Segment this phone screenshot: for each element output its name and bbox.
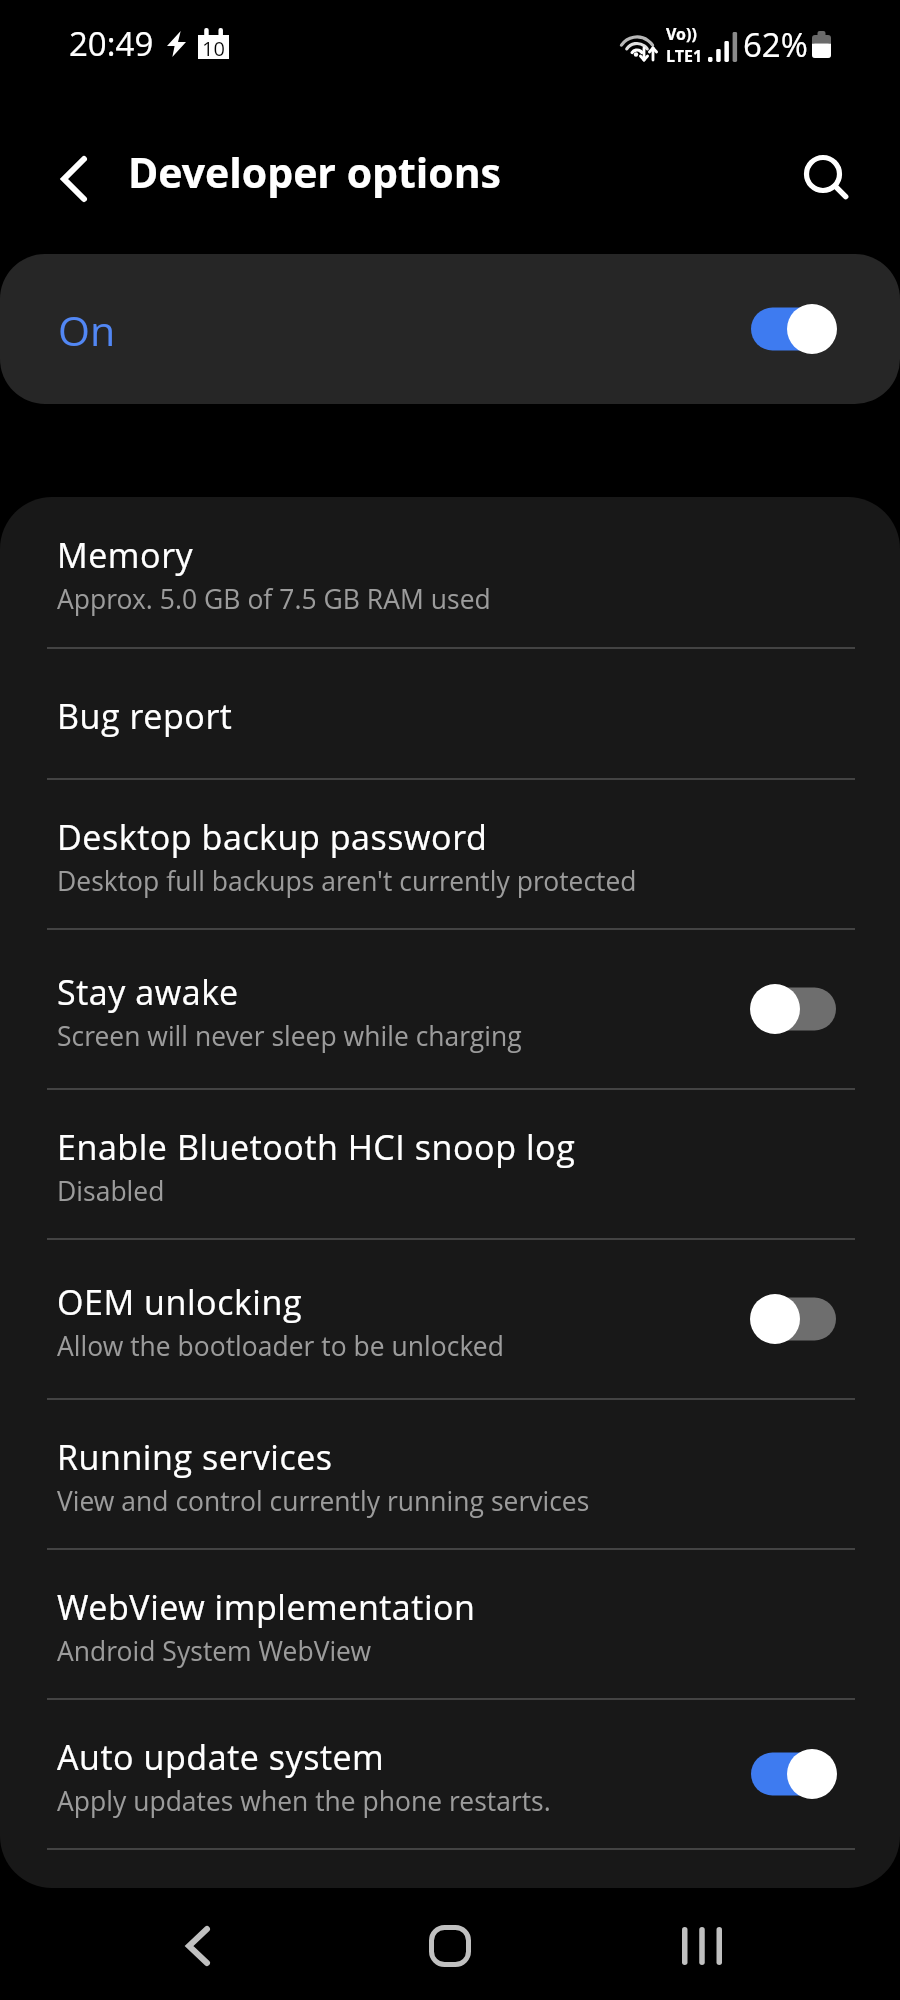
button[interactable]: Desktop backup password — [0, 780, 900, 928]
staticText: Running services — [57, 1434, 333, 1480]
button[interactable]: WebView implementation — [0, 1550, 900, 1698]
button[interactable]: Recent apps — [657, 1901, 747, 1991]
staticText: Android System WebView — [57, 1633, 372, 1669]
button[interactable]: OEM unlocking — [0, 1240, 900, 1398]
button[interactable]: Navigate up — [38, 143, 110, 215]
button[interactable]: Home — [405, 1901, 495, 1991]
staticText: 62% — [743, 22, 808, 67]
button[interactable]: Enable Bluetooth HCI snoop log — [0, 1090, 900, 1238]
staticText: Allow the bootloader to be unlocked — [57, 1328, 504, 1364]
staticText: View and control currently running servi… — [57, 1483, 590, 1519]
staticText: 10 — [202, 35, 225, 59]
staticText: OEM unlocking — [57, 1279, 303, 1325]
button[interactable]: Bug report — [0, 649, 900, 778]
staticText: WebView implementation — [57, 1584, 476, 1630]
staticText: 20:49 — [69, 21, 154, 66]
button[interactable]: Auto update system — [0, 1700, 900, 1848]
staticText: Auto update system — [57, 1734, 385, 1780]
button[interactable]: Memory — [0, 497, 900, 647]
button[interactable]: Running services — [0, 1400, 900, 1548]
button[interactable]: Search — [788, 139, 864, 215]
button[interactable]: On — [0, 254, 900, 404]
button[interactable]: Stay awake — [0, 930, 900, 1088]
staticText: Memory — [57, 532, 194, 578]
staticText: Desktop backup password — [57, 814, 488, 860]
staticText: Stay awake — [57, 969, 239, 1015]
staticText: Apply updates when the phone restarts. — [57, 1783, 551, 1819]
staticText: Developer options — [128, 144, 501, 200]
staticText: On — [58, 302, 116, 358]
staticText: Bug report — [57, 693, 233, 739]
staticText: LTE1 — [666, 45, 703, 67]
button[interactable]: Back — [153, 1901, 243, 1991]
staticText: Screen will never sleep while charging — [57, 1018, 522, 1054]
staticText: Desktop full backups aren't currently pr… — [57, 863, 637, 899]
staticText: Approx. 5.0 GB of 7.5 GB RAM used — [57, 581, 491, 617]
staticText: Enable Bluetooth HCI snoop log — [57, 1124, 576, 1170]
staticText: Disabled — [57, 1173, 165, 1209]
staticText: Vo)) — [666, 23, 697, 45]
